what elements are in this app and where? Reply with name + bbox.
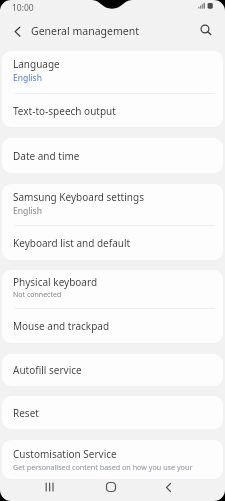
staticText: Physical keyboard [13, 275, 98, 289]
staticText: English [13, 72, 42, 84]
staticText: Mouse and trackpad [13, 319, 110, 333]
button[interactable]: Date and time [2, 138, 223, 173]
staticText: Autofill service [13, 363, 82, 377]
staticText: Get personalised content based on how yo… [13, 462, 193, 472]
button[interactable]: Reset [2, 396, 223, 429]
button[interactable]: Autofill service [2, 354, 223, 386]
staticText: Language [13, 57, 60, 71]
button[interactable] [0, 18, 28, 46]
button[interactable] [100, 476, 122, 498]
button[interactable]: Customisation Service [2, 440, 223, 479]
button[interactable] [193, 18, 221, 46]
staticText: Not connected [13, 290, 62, 300]
staticText: Keyboard list and default [13, 236, 131, 250]
button[interactable] [157, 476, 179, 498]
staticText: Customisation Service [13, 447, 117, 461]
button[interactable]: Text-to-speech output [2, 94, 223, 127]
staticText: Reset [13, 406, 39, 420]
button[interactable]: Keyboard list and default [2, 226, 223, 260]
staticText: Samsung Keyboard settings [13, 190, 144, 204]
staticText: 10:00 [12, 2, 34, 14]
staticText: Date and time [13, 149, 80, 163]
button[interactable] [39, 476, 61, 498]
button[interactable]: Samsung Keyboard settings [2, 184, 223, 225]
staticText: English [13, 205, 42, 217]
button[interactable]: Mouse and trackpad [2, 309, 223, 343]
button[interactable]: Language [2, 51, 223, 93]
staticText: Text-to-speech output [13, 104, 116, 118]
button[interactable]: Physical keyboard [2, 270, 223, 308]
staticText: General management [31, 24, 139, 38]
